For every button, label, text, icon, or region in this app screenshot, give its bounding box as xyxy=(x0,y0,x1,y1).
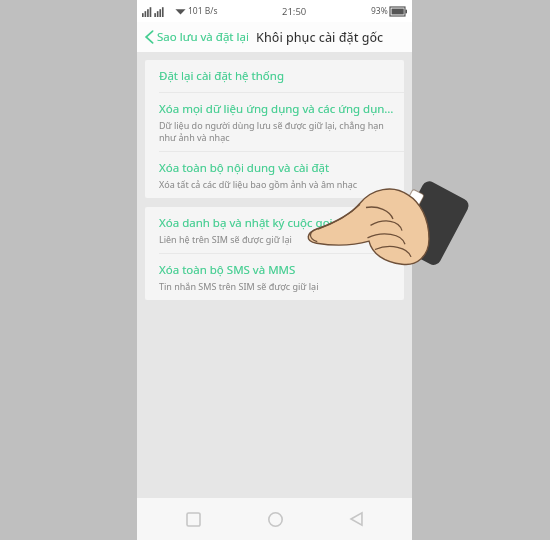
button[interactable]: Đặt lại cài đặt hệ thống xyxy=(145,60,404,92)
button[interactable]: Xóa toàn bộ SMS và MMS xyxy=(145,254,404,300)
button[interactable]: Back xyxy=(331,498,381,540)
staticText: Xóa toàn bộ SMS và MMS xyxy=(159,262,296,278)
button[interactable]: Xóa mọi dữ liệu ứng dụng và các ứng dụng… xyxy=(145,93,404,151)
button[interactable]: Sao lưu và đặt lại xyxy=(145,22,255,52)
staticText: Sao lưu và đặt lại xyxy=(157,29,249,45)
button[interactable]: Recent apps xyxy=(168,498,218,540)
button[interactable]: Home xyxy=(250,498,300,540)
staticText: Dữ liệu do người dùng lưu sẽ được giữ lạ… xyxy=(159,119,394,143)
staticText: Xóa danh bạ và nhật ký cuộc gọi xyxy=(159,215,333,231)
staticText: Xóa tất cả các dữ liệu bao gồm ảnh và âm… xyxy=(159,178,358,190)
button[interactable]: Xóa danh bạ và nhật ký cuộc gọi xyxy=(145,207,404,253)
staticText: Liên hệ trên SIM sẽ được giữ lại xyxy=(159,233,292,245)
button[interactable]: Xóa toàn bộ nội dung và cài đặt xyxy=(145,152,404,198)
staticText: Xóa mọi dữ liệu ứng dụng và các ứng dụng… xyxy=(159,101,394,117)
staticText: Tin nhắn SMS trên SIM sẽ được giữ lại xyxy=(159,280,319,292)
staticText: 101 B/s xyxy=(188,5,218,17)
staticText: 93% xyxy=(371,5,388,17)
staticText: Xóa toàn bộ nội dung và cài đặt xyxy=(159,160,330,176)
staticText: Khôi phục cài đặt gốc xyxy=(256,29,384,46)
staticText: 21:50 xyxy=(282,5,307,18)
staticText: Đặt lại cài đặt hệ thống xyxy=(159,68,284,84)
